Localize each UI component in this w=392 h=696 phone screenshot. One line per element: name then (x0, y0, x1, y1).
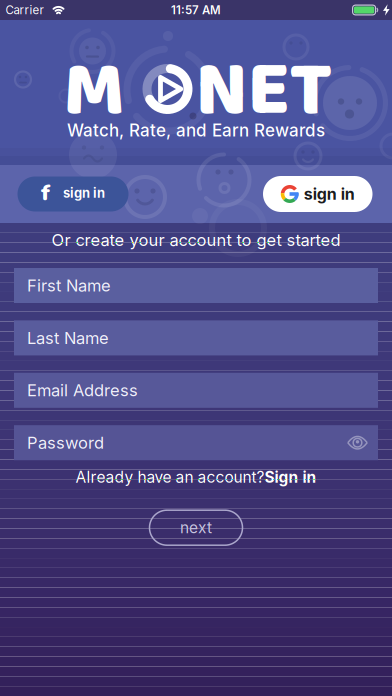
staticText: Watch, Rate, and Earn Rewards (67, 120, 325, 141)
staticText: sign in (63, 185, 105, 201)
staticText: Sign in (264, 468, 316, 487)
staticText: Password (27, 433, 104, 453)
button[interactable]: f (17, 176, 128, 211)
staticText: First Name (27, 275, 111, 295)
button[interactable]: sign in (263, 176, 372, 212)
staticText: Last Name (27, 328, 109, 348)
staticText: 11:57 AM (171, 3, 221, 17)
staticText: f (41, 178, 50, 208)
staticText: Already have an account? (75, 468, 264, 487)
button[interactable]: Sign in (264, 468, 316, 487)
staticText: Carrier (5, 3, 43, 17)
staticText: sign in (304, 184, 355, 204)
staticText: Or create your account to get started (51, 230, 340, 250)
staticText: Email Address (27, 380, 138, 400)
staticText: M (63, 30, 124, 153)
staticText: next (180, 518, 212, 537)
button[interactable]: next (149, 510, 242, 545)
staticText: NET (195, 30, 332, 153)
button[interactable]: Show password (341, 436, 378, 450)
